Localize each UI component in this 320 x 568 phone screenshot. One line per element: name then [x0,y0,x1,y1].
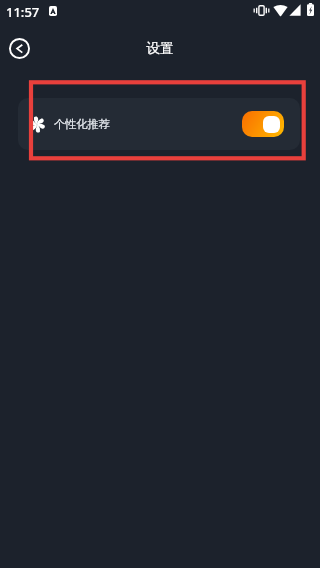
staticText: 设置 [146,40,174,57]
staticText: 个性化推荐 [54,117,110,131]
button[interactable]: 个性化推荐 [18,98,300,150]
button[interactable]: Back [5,34,33,62]
staticText: 11:57 [6,3,40,21]
button[interactable]: 个性化推荐开关 [242,111,284,137]
